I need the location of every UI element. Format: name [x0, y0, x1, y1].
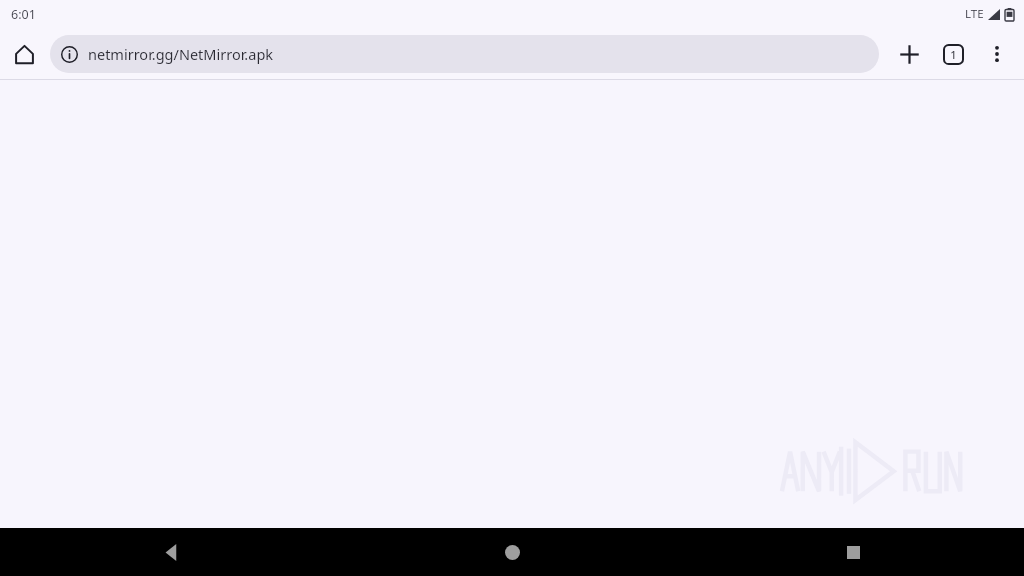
button[interactable]: Home	[342, 528, 683, 576]
staticText: LTE	[965, 6, 984, 22]
button[interactable]: Recent apps	[683, 528, 1024, 576]
button[interactable]: More options	[975, 32, 1019, 76]
button[interactable]: New tab	[887, 32, 931, 76]
button[interactable]: netmirror.gg/NetMirror.apk	[50, 35, 879, 73]
button[interactable]: Home	[0, 30, 48, 78]
button[interactable]: Back	[0, 528, 342, 576]
staticText: 1	[950, 47, 957, 62]
button[interactable]: Switch tabs, 1 tab	[931, 32, 975, 76]
staticText: 6:01	[11, 6, 36, 23]
staticText: netmirror.gg/NetMirror.apk	[88, 44, 274, 64]
